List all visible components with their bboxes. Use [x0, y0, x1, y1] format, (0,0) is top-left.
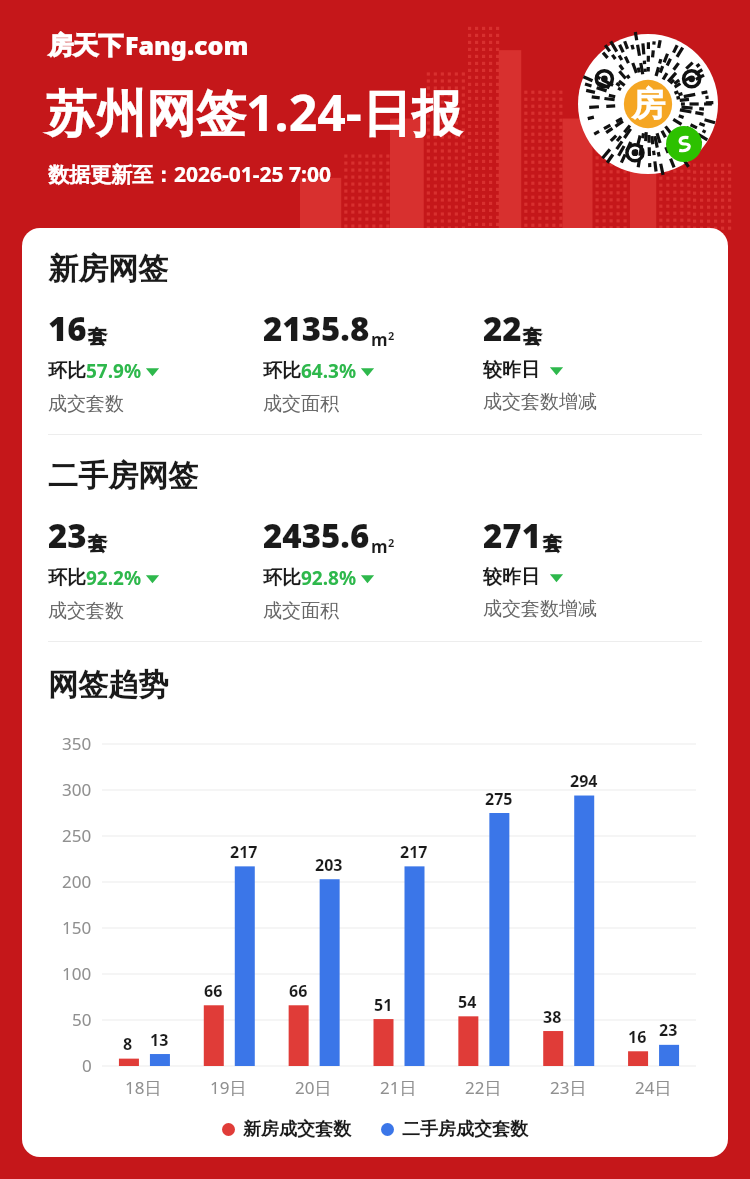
- staticText: 较昨日: [483, 565, 540, 589]
- staticText: 套: [543, 532, 562, 556]
- button[interactable]: 2135.8: [263, 306, 483, 416]
- staticText: 51: [374, 994, 393, 1016]
- button[interactable]: 二手房成交套数: [381, 1118, 528, 1141]
- staticText: 23: [659, 1019, 678, 1041]
- staticText: 环比: [48, 359, 86, 383]
- button[interactable]: 新房成交套数: [222, 1118, 351, 1141]
- staticText: 16: [628, 1026, 647, 1048]
- button[interactable]: 16: [48, 306, 263, 416]
- staticText: 数据更新至：: [48, 162, 174, 188]
- button[interactable]: 房天下 Fang.com logo: [48, 28, 249, 62]
- staticText: 217: [230, 841, 258, 863]
- staticText: 二手房网签: [48, 457, 198, 495]
- button[interactable]: 22: [483, 306, 702, 414]
- staticText: 2: [388, 328, 395, 343]
- staticText: 92.8%: [301, 565, 357, 591]
- staticText: 200: [62, 870, 92, 893]
- staticText: 19日: [210, 1076, 247, 1099]
- staticText: 54: [458, 991, 477, 1013]
- staticText: 房天下: [48, 30, 123, 61]
- staticText: 92.2%: [86, 565, 142, 591]
- staticText: 203: [315, 854, 343, 876]
- staticText: 294: [570, 770, 598, 792]
- staticText: 64.3%: [301, 358, 357, 384]
- staticText: 16: [48, 306, 87, 351]
- staticText: 成交套数: [48, 599, 124, 623]
- staticText: 环比: [263, 566, 301, 590]
- staticText: 较昨日: [483, 358, 540, 382]
- staticText: 21日: [380, 1076, 417, 1099]
- staticText: 38: [543, 1006, 562, 1028]
- staticText: 网签趋势: [48, 666, 168, 704]
- staticText: 13: [150, 1029, 169, 1051]
- staticText: 成交面积: [263, 392, 339, 416]
- staticText: 成交套数: [48, 392, 124, 416]
- staticText: 57.9%: [86, 358, 142, 384]
- staticText: 环比: [48, 566, 86, 590]
- staticText: 2435.6: [263, 513, 370, 558]
- staticText: 2: [388, 535, 395, 550]
- staticText: 271: [483, 513, 542, 558]
- staticText: 房: [631, 83, 665, 126]
- staticText: 8: [123, 1033, 133, 1055]
- staticText: 环比: [263, 359, 301, 383]
- staticText: 套: [88, 325, 107, 349]
- staticText: 成交面积: [263, 599, 339, 623]
- staticText: 2135.8: [263, 306, 370, 351]
- staticText: 250: [62, 824, 92, 847]
- button[interactable]: WeChat mini program QR code: [578, 34, 718, 174]
- button[interactable]: 2435.6: [263, 513, 483, 623]
- staticText: 150: [62, 916, 92, 939]
- staticText: 350: [62, 732, 92, 755]
- staticText: 300: [62, 778, 92, 801]
- staticText: 18日: [125, 1076, 162, 1099]
- staticText: 275: [485, 788, 513, 810]
- staticText: 新房成交套数: [243, 1118, 351, 1141]
- staticText: Fang.com: [125, 28, 249, 62]
- staticText: 套: [523, 325, 542, 349]
- staticText: 成交套数增减: [483, 597, 597, 621]
- staticText: 66: [289, 980, 308, 1002]
- staticText: 0: [82, 1054, 92, 1077]
- staticText: 100: [62, 962, 92, 985]
- staticText: 套: [88, 532, 107, 556]
- staticText: m: [371, 328, 388, 351]
- staticText: 成交套数增减: [483, 390, 597, 414]
- staticText: 24日: [635, 1076, 672, 1099]
- button[interactable]: 23: [48, 513, 263, 623]
- staticText: 22: [483, 306, 522, 351]
- staticText: 新房网签: [48, 250, 168, 288]
- staticText: 二手房成交套数: [402, 1118, 528, 1141]
- button[interactable]: 271: [483, 513, 702, 621]
- staticText: 66: [204, 980, 223, 1002]
- staticText: 23: [48, 513, 87, 558]
- staticText: 苏州网签1.24-日报: [46, 78, 462, 146]
- staticText: 2026-01-25 7:00: [174, 160, 331, 189]
- staticText: m: [371, 535, 388, 558]
- staticText: 22日: [465, 1076, 502, 1099]
- staticText: 23日: [550, 1076, 587, 1099]
- staticText: 217: [400, 841, 428, 863]
- staticText: 20日: [295, 1076, 332, 1099]
- staticText: 50: [72, 1008, 92, 1031]
